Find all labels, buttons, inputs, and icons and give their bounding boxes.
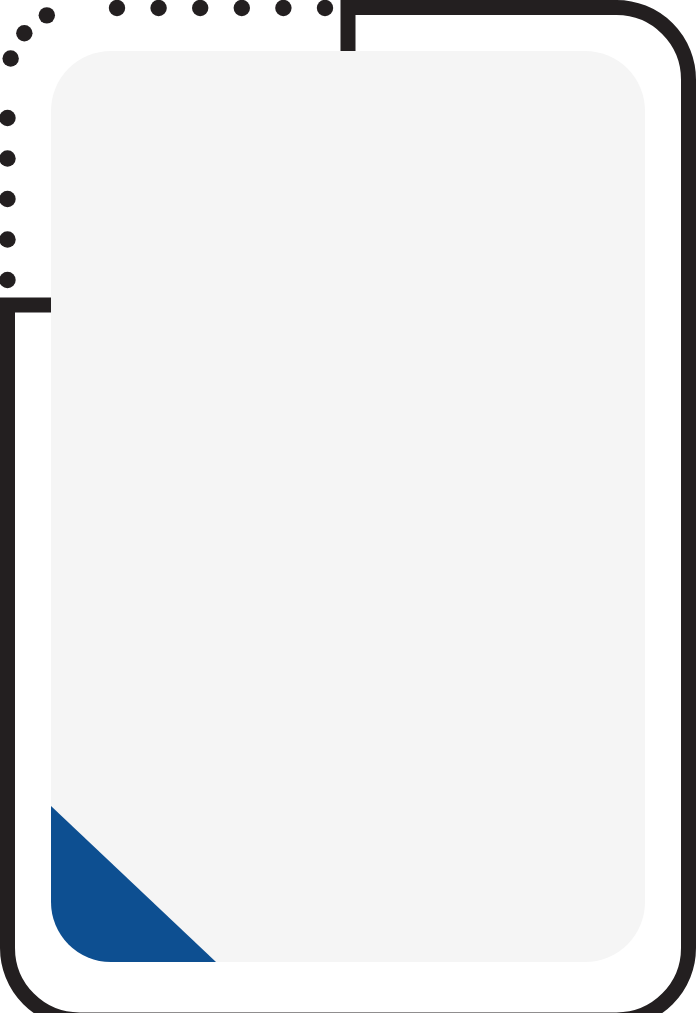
button[interactable]: Document page with dashed cut border xyxy=(0,0,696,1013)
